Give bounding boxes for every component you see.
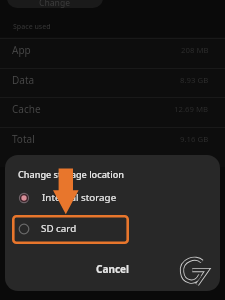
- staticText: Change: [39, 0, 71, 8]
- button[interactable]: Internal storage: [5, 184, 220, 212]
- button[interactable]: App: [0, 38, 225, 68]
- staticText: SD card: [41, 222, 77, 235]
- staticText: Total: [12, 132, 35, 146]
- staticText: 12.69 MB: [174, 104, 209, 115]
- staticText: 208 MB: [181, 45, 209, 56]
- staticText: 8.93 GB: [180, 75, 209, 86]
- staticText: Cancel: [96, 262, 130, 276]
- button[interactable]: SD card: [12, 215, 129, 244]
- button[interactable]: Cancel: [85, 256, 141, 282]
- staticText: 9.16 GB: [180, 134, 209, 145]
- staticText: App: [12, 43, 31, 57]
- button[interactable]: Change: [7, 0, 103, 8]
- staticText: Internal storage: [42, 191, 117, 204]
- staticText: Change storage location: [18, 168, 125, 180]
- button[interactable]: Cache: [0, 97, 225, 127]
- staticText: Space used: [13, 22, 51, 32]
- button[interactable]: Data: [0, 68, 225, 98]
- button[interactable]: Total: [0, 127, 225, 157]
- staticText: Data: [12, 73, 35, 87]
- staticText: Cache: [12, 102, 41, 116]
